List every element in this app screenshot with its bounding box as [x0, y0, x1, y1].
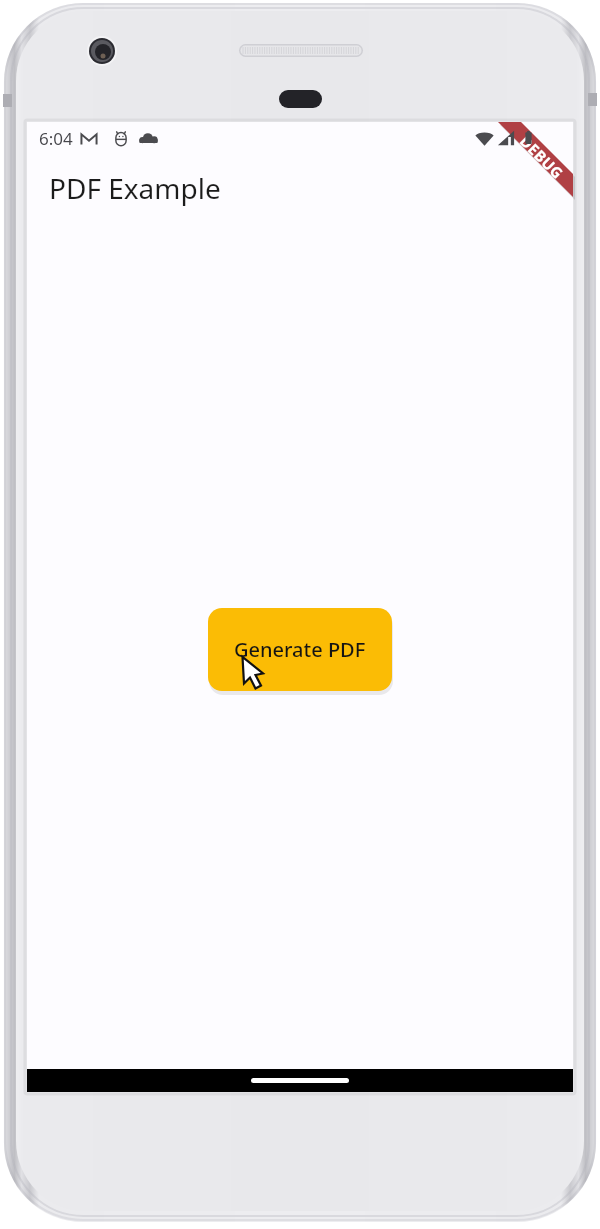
staticText: DEBUG	[516, 131, 568, 183]
button[interactable]: Generate PDF	[208, 608, 392, 691]
staticText: Generate PDF	[234, 636, 366, 663]
staticText: PDF Example	[49, 169, 221, 207]
staticText: 6:04	[39, 127, 73, 150]
